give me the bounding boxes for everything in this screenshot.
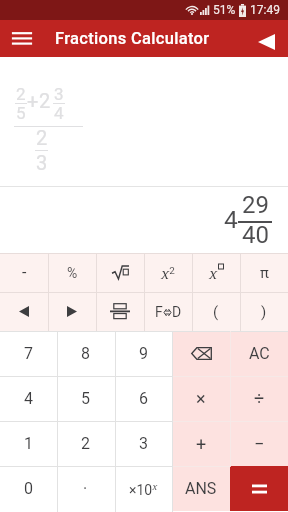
button[interactable]: 6 [114,376,172,421]
staticText: + [196,433,207,454]
staticText: F [155,304,163,320]
staticText: × [196,388,206,409]
button[interactable]: x [192,253,240,292]
staticText: 5 [81,389,90,408]
button[interactable] [172,331,230,376]
staticText: π [260,264,269,282]
staticText: 51% [213,3,236,17]
staticText: 6 [139,389,148,408]
staticText: x2 [161,263,175,283]
button[interactable]: 7 [0,331,57,376]
staticText: AC [249,344,270,363]
staticText: 0 [24,479,33,498]
staticText: 7 [24,344,33,363]
button[interactable]: 5 [57,376,114,421]
button[interactable]: x2 [144,253,192,292]
button[interactable]: F [144,292,192,331]
staticText: ) [261,303,267,321]
staticText: 17:49 [250,3,280,17]
button[interactable]: 4 [0,376,57,421]
button[interactable]: ANS [172,466,230,511]
staticText: Fractions Calculator [55,29,210,48]
button[interactable]: 0 [0,466,57,511]
staticText: 3 [139,434,148,453]
button[interactable]: × [172,376,230,421]
staticText: 1 [24,434,33,453]
staticText: ANS [185,479,217,498]
staticText: x [209,263,218,283]
button[interactable] [96,292,144,331]
staticText: − [254,433,265,454]
staticText: 3 [36,151,48,174]
staticText: 29 [242,191,269,219]
button[interactable]: − [230,421,288,466]
staticText: 5 [16,103,26,123]
staticText: ×10x [129,480,158,498]
staticText: 3 [54,84,64,104]
staticText: 4 [224,205,238,234]
button[interactable]: 8 [57,331,114,376]
button[interactable]: 2 [57,421,114,466]
staticText: 40 [242,221,269,249]
staticText: ( [213,303,219,321]
button[interactable] [230,466,288,511]
button[interactable]: π [240,253,288,292]
staticText: 2 [16,84,26,104]
staticText: 2 [81,434,90,453]
button[interactable]: % [48,253,96,292]
staticText: ÷ [254,388,265,409]
staticText: + [27,89,39,112]
button[interactable]: ×10x [114,466,172,511]
button[interactable]: 3 [114,421,172,466]
staticText: · [83,479,88,498]
button[interactable] [48,292,96,331]
button[interactable]: ÷ [230,376,288,421]
button[interactable]: 9 [114,331,172,376]
staticText: 9 [139,344,148,363]
button[interactable]: · [57,466,114,511]
staticText: 8 [81,344,90,363]
staticText: 2 [39,89,51,112]
button[interactable] [96,253,144,292]
staticText: - [22,263,27,282]
staticText: 4 [54,103,64,123]
button[interactable] [244,20,288,57]
button[interactable]: 1 [0,421,57,466]
staticText: % [67,265,78,281]
button[interactable]: AC [230,331,288,376]
staticText: D [172,304,182,320]
staticText: 2 [36,126,48,149]
button[interactable] [0,292,48,331]
button[interactable] [0,20,44,57]
button[interactable]: ) [240,292,288,331]
staticText: 4 [24,389,33,408]
button[interactable]: + [172,421,230,466]
button[interactable]: - [0,253,48,292]
button[interactable]: ( [192,292,240,331]
